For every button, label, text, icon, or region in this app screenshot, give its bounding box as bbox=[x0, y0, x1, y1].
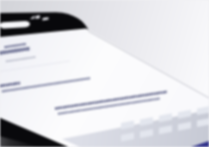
button[interactable]: Messaging app on phone bbox=[0, 0, 209, 147]
